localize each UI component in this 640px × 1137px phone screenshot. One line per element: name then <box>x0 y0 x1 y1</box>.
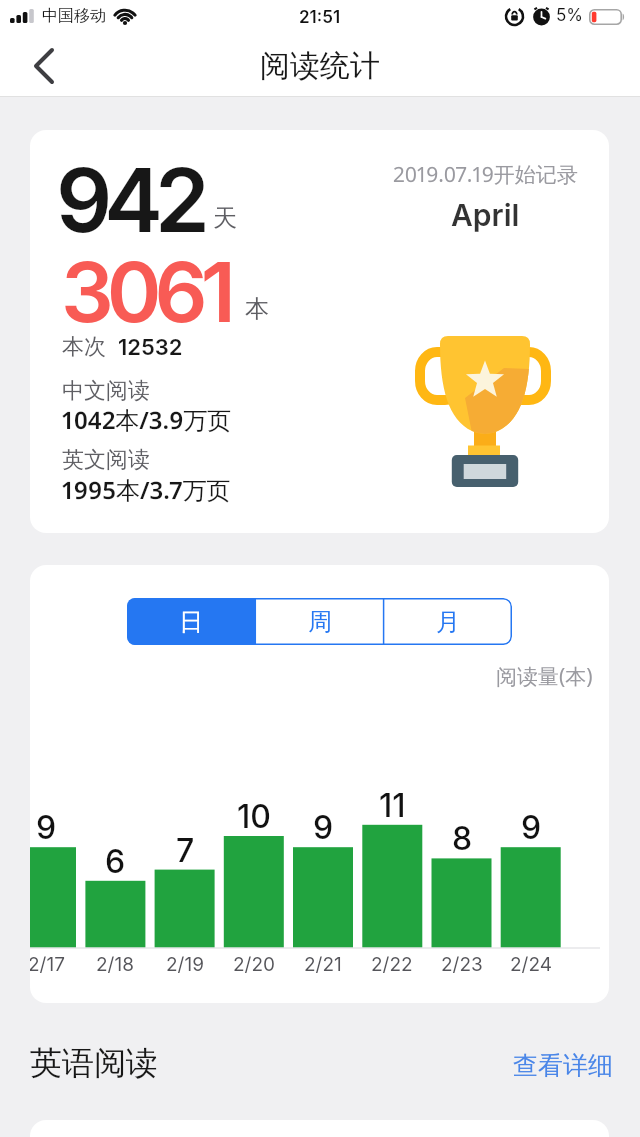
staticText: 2/19 <box>166 953 204 976</box>
staticText: 中国移动 <box>42 6 106 26</box>
staticText: 2/23 <box>441 953 483 976</box>
staticText: 7 <box>176 831 195 870</box>
staticText: 英文阅读 <box>62 446 150 474</box>
staticText: 2/24 <box>510 953 552 976</box>
staticText: 查看详细 <box>513 1050 613 1081</box>
staticText: 日 <box>179 607 203 637</box>
staticText: 21:51 <box>299 7 341 28</box>
staticText: 中文阅读 <box>62 377 150 405</box>
staticText: 1042本/3.9万页 <box>62 403 232 436</box>
staticText: 本次 <box>62 333 106 361</box>
staticText: 1995本/3.7万页 <box>62 473 231 506</box>
staticText: 阅读量(本) <box>496 662 593 691</box>
staticText: 2/18 <box>96 953 134 976</box>
staticText: 5% <box>556 5 584 26</box>
staticText: 3061 <box>61 242 229 342</box>
staticText: April <box>451 197 520 233</box>
staticText: 9 <box>313 808 334 847</box>
staticText: 942 <box>56 147 202 253</box>
staticText: 8 <box>452 819 473 858</box>
staticText: 本 <box>245 294 269 324</box>
button[interactable] <box>16 38 72 94</box>
staticText: 2/20 <box>233 953 276 976</box>
staticText: 英语阅读 <box>30 1043 158 1083</box>
staticText: 6 <box>105 842 126 881</box>
button[interactable]: 月 <box>384 598 512 645</box>
staticText: 2/17 <box>30 953 65 976</box>
button[interactable]: 查看详细 <box>497 1048 613 1082</box>
staticText: 12532 <box>118 334 183 361</box>
staticText: 天 <box>213 203 237 233</box>
staticText: 2019.07.19开始记录 <box>393 160 578 189</box>
staticText: 周 <box>308 607 332 637</box>
button[interactable]: 周 <box>255 598 384 645</box>
button[interactable]: 日 <box>127 598 255 645</box>
staticText: 9 <box>521 808 542 847</box>
staticText: 2/22 <box>371 953 413 976</box>
staticText: 阅读统计 <box>260 47 380 85</box>
staticText: 2/21 <box>304 953 342 976</box>
staticText: 10 <box>237 797 271 836</box>
staticText: 9 <box>36 808 57 847</box>
staticText: 11 <box>379 786 406 825</box>
staticText: 月 <box>436 607 460 637</box>
